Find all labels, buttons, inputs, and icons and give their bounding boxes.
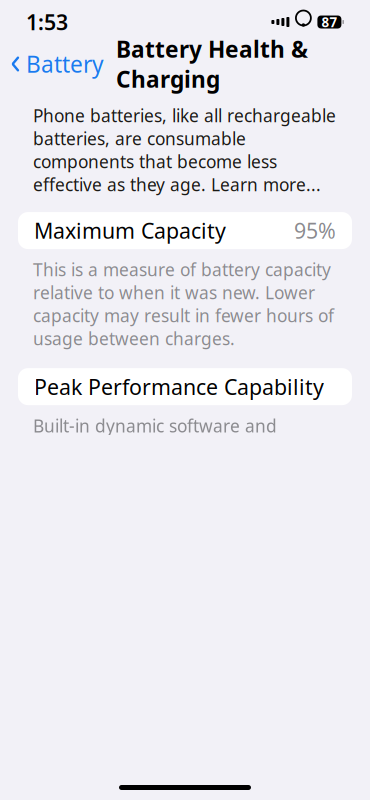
- staticText: Peak Performance Capability: [34, 372, 324, 401]
- button[interactable]: Battery: [0, 43, 104, 85]
- staticText: Maximum Capacity: [34, 216, 226, 245]
- button[interactable]: Maximum Capacity: [18, 212, 352, 249]
- staticText: 1:53: [26, 8, 68, 36]
- staticText: 95%: [294, 216, 336, 245]
- staticText: Built-in dynamic software and hardware s…: [33, 414, 323, 529]
- staticText: Battery Health & Charging: [116, 34, 308, 94]
- button[interactable]: Peak Performance Capability: [18, 368, 352, 405]
- staticText: 87: [321, 13, 337, 31]
- staticText: Phone batteries, like all rechargeable b…: [33, 104, 336, 196]
- staticText: Battery: [26, 49, 104, 79]
- staticText: This is a measure of battery capacity re…: [33, 258, 334, 350]
